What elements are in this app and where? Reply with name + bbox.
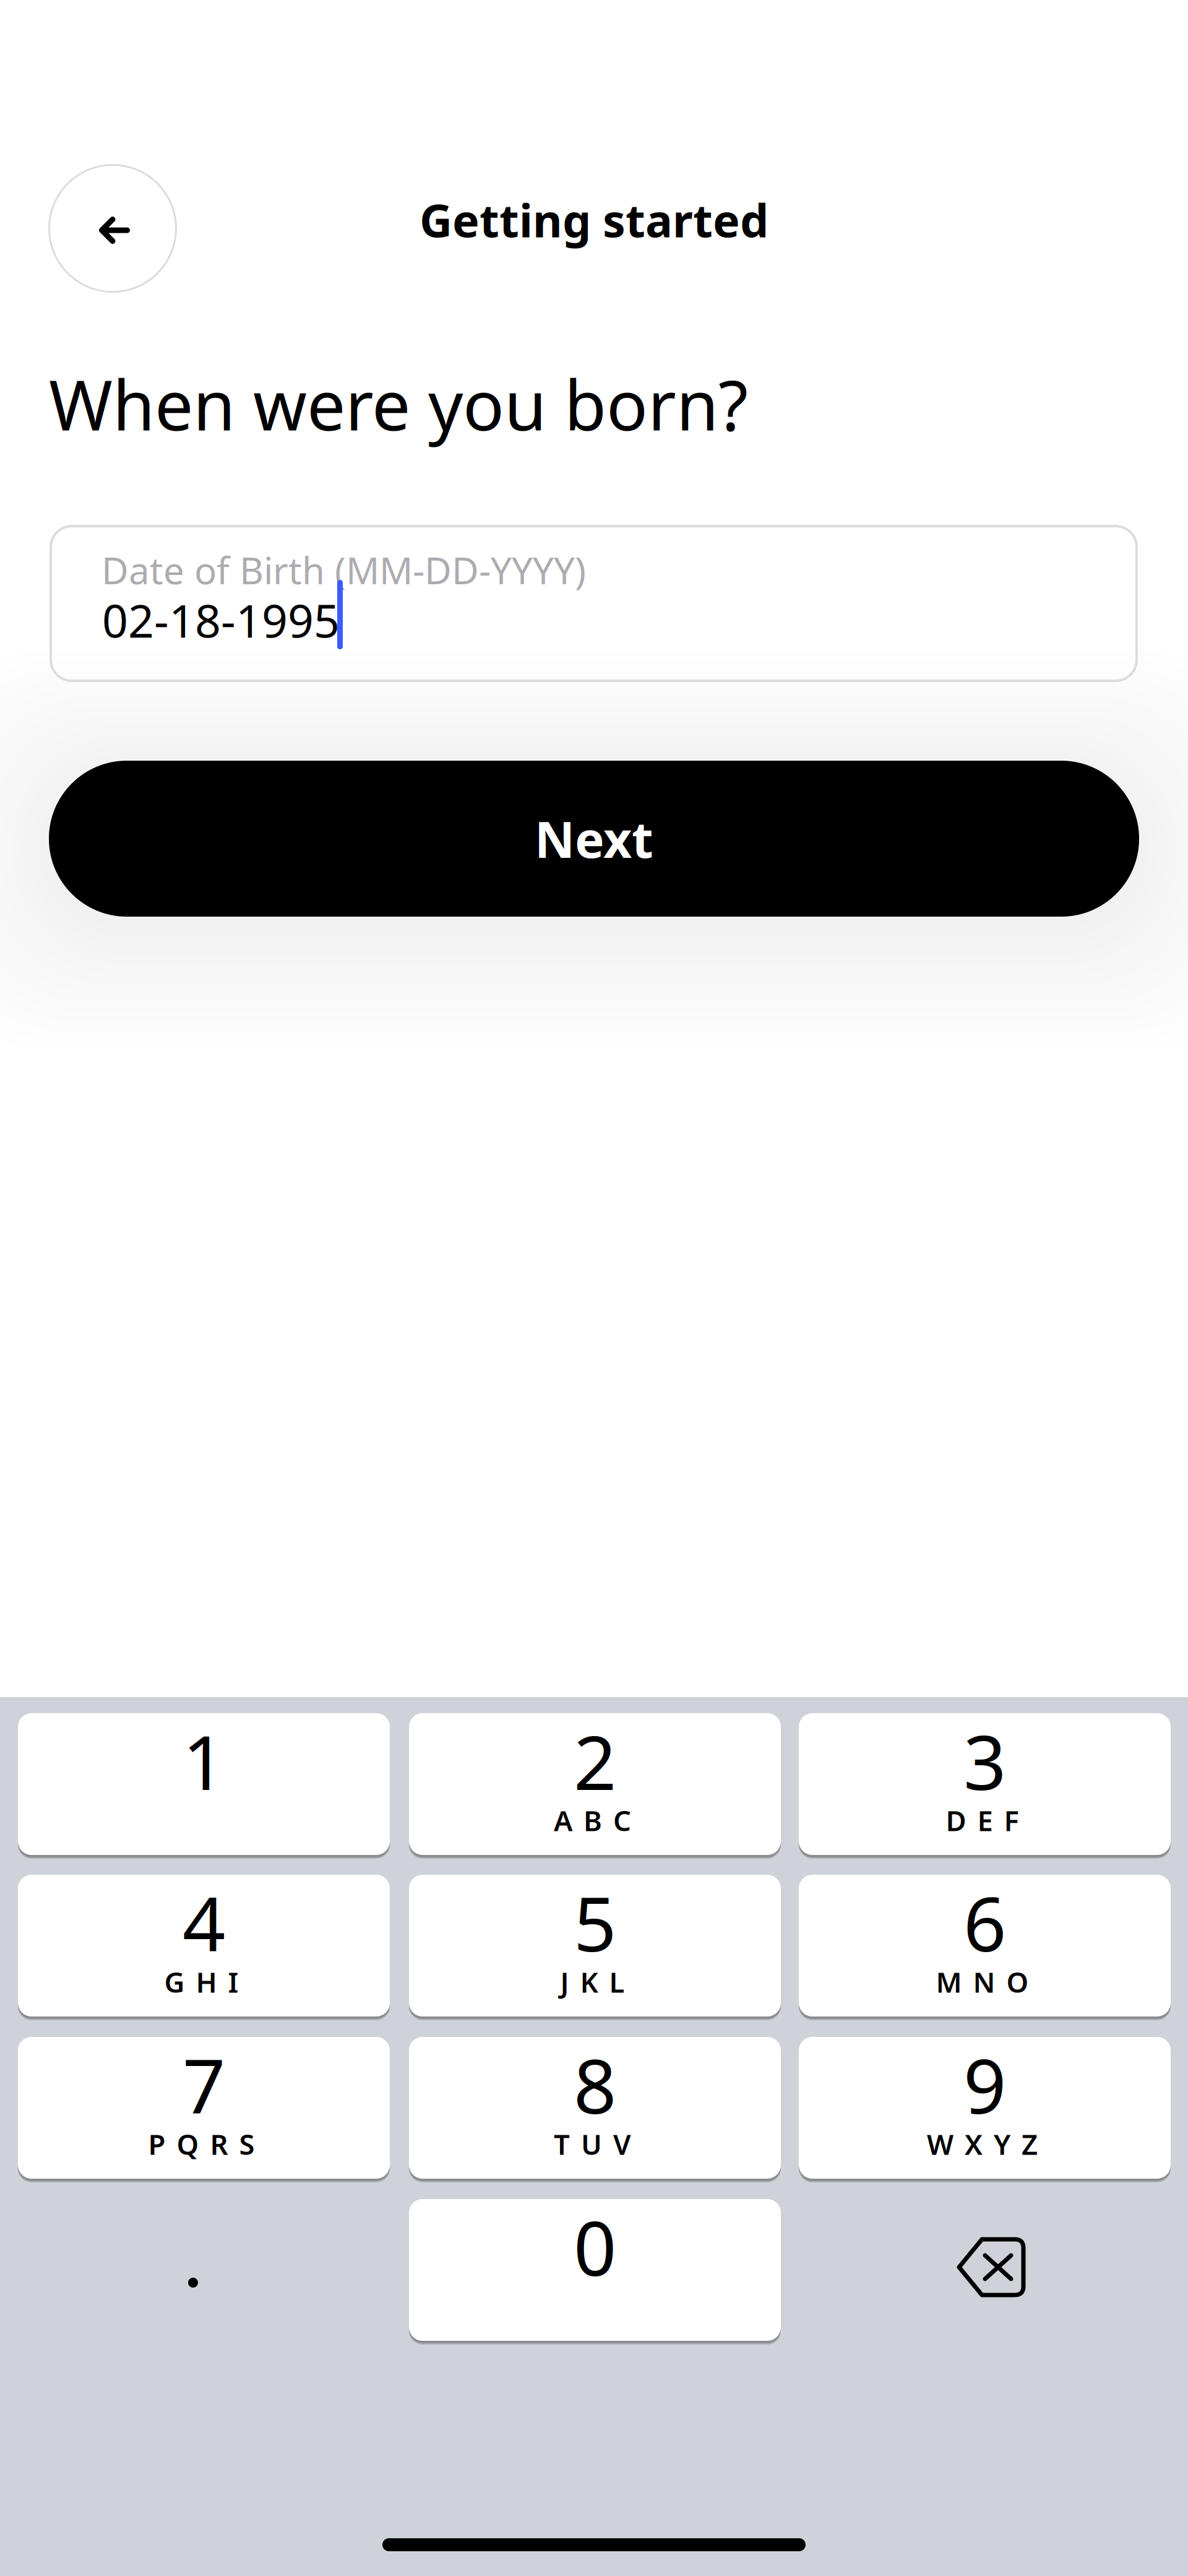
button[interactable]: 9 <box>799 2037 1171 2182</box>
staticText: 9 <box>963 2035 1006 2134</box>
staticText: 7 <box>183 2035 225 2134</box>
staticText: 0 <box>574 2197 616 2297</box>
button[interactable]: 0 <box>409 2199 781 2345</box>
staticText: TUV <box>554 2125 631 2163</box>
staticText: Getting started <box>420 190 768 250</box>
button[interactable]: 4 <box>18 1875 390 2020</box>
button[interactable]: Decimal point <box>18 2199 390 2341</box>
button[interactable]: 1 <box>18 1713 390 1859</box>
button[interactable]: Back <box>48 164 177 293</box>
staticText: 3 <box>963 1711 1006 1811</box>
staticText: 1 <box>183 1711 225 1811</box>
button[interactable]: 7 <box>18 2037 390 2182</box>
button[interactable]: 5 <box>409 1875 781 2020</box>
staticText: Date of Birth (MM-DD-YYYY) <box>101 545 586 595</box>
staticText: 6 <box>963 1873 1006 1972</box>
staticText: 5 <box>574 1873 616 1972</box>
staticText: ABC <box>554 1802 631 1839</box>
button[interactable]: 2 <box>409 1713 781 1859</box>
staticText: 02-18-1995 <box>102 590 340 650</box>
staticText: DEF <box>946 1802 1019 1839</box>
staticText: 2 <box>574 1711 616 1811</box>
staticText: WXYZ <box>927 2125 1038 2163</box>
staticText: JKL <box>560 1963 625 2000</box>
button[interactable]: Next <box>49 761 1139 917</box>
staticText: 4 <box>183 1873 225 1972</box>
button[interactable]: 8 <box>409 2037 781 2182</box>
button[interactable]: Delete <box>799 2199 1171 2341</box>
staticText: Next <box>535 806 653 872</box>
button[interactable]: 6 <box>799 1875 1171 2020</box>
staticText: 8 <box>574 2035 616 2134</box>
staticText: MNO <box>936 1963 1029 2000</box>
button[interactable]: 3 <box>799 1713 1171 1859</box>
staticText: GHI <box>164 1963 239 2000</box>
staticText: PQRS <box>148 2125 255 2163</box>
staticText: When were you born? <box>49 358 748 449</box>
